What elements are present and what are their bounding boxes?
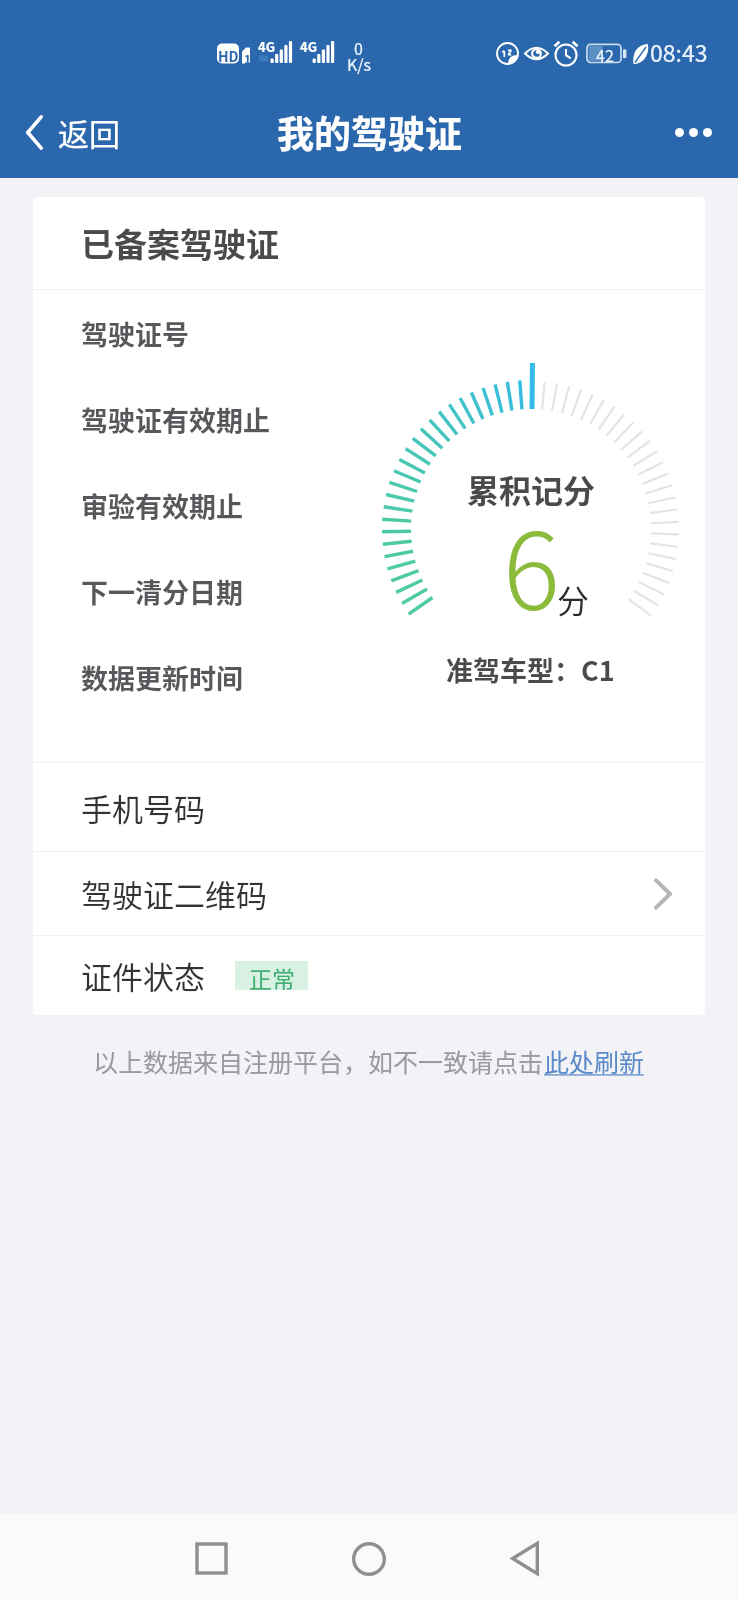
staticText: 下一清分日期 bbox=[81, 572, 243, 611]
staticText: 42 bbox=[596, 43, 614, 66]
staticText: 我的驾驶证 bbox=[277, 105, 462, 159]
button[interactable]: Home bbox=[319, 1515, 419, 1600]
staticText: 返回 bbox=[58, 110, 120, 155]
staticText: 6 bbox=[503, 487, 560, 640]
staticText: 证件状态 bbox=[81, 953, 205, 998]
staticText: 4G bbox=[300, 37, 317, 56]
staticText: 准驾车型：C1 bbox=[446, 650, 615, 689]
button[interactable]: 此处刷新 bbox=[544, 1043, 645, 1079]
staticText: 数据更新时间 bbox=[81, 658, 243, 697]
staticText: 审验有效期止 bbox=[81, 486, 243, 525]
staticText: 累积记分 bbox=[467, 466, 596, 512]
button[interactable]: 手机号码 bbox=[33, 763, 705, 851]
staticText: 正常 bbox=[249, 961, 295, 990]
staticText: HD bbox=[218, 46, 239, 66]
button[interactable]: 返回 bbox=[0, 96, 138, 169]
button[interactable]: More options bbox=[651, 100, 738, 165]
staticText: K/s bbox=[347, 52, 372, 75]
staticText: 驾驶证有效期止 bbox=[81, 400, 270, 439]
button[interactable]: Back bbox=[475, 1515, 575, 1600]
staticText: 4G bbox=[258, 37, 275, 56]
button[interactable]: 驾驶证二维码 bbox=[33, 852, 705, 935]
staticText: 分 bbox=[557, 576, 590, 622]
staticText: 以上数据来自注册平台，如不一致请点击 bbox=[93, 1043, 544, 1079]
staticText: 驾驶证号 bbox=[81, 314, 189, 353]
staticText: 驾驶证二维码 bbox=[81, 871, 267, 916]
staticText: 08:43 bbox=[650, 35, 708, 68]
staticText: 已备案驾驶证 bbox=[81, 219, 279, 267]
staticText: 0 bbox=[354, 36, 363, 59]
staticText: 手机号码 bbox=[81, 785, 205, 830]
staticText: 1 bbox=[244, 50, 252, 67]
button[interactable]: Recents bbox=[161, 1515, 261, 1600]
